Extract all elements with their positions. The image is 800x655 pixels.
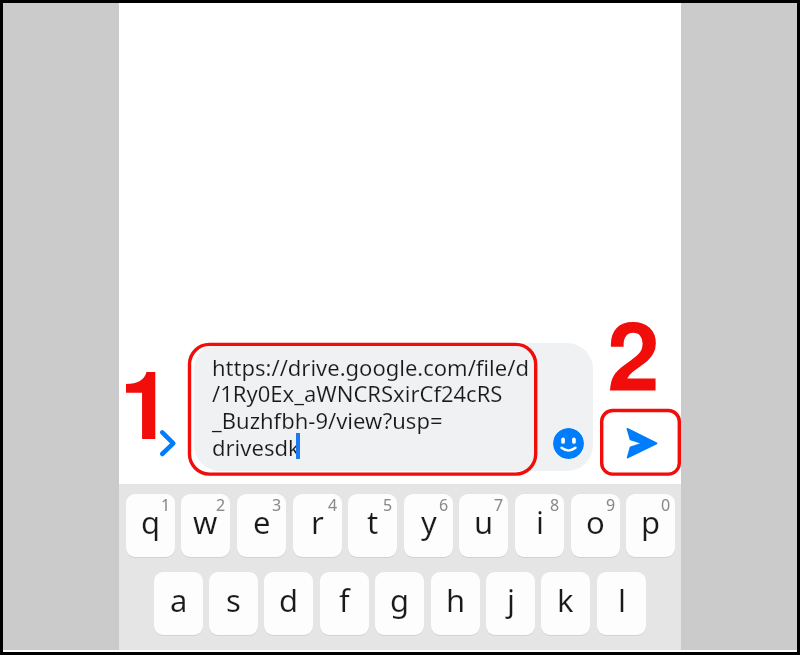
- staticText: https://drive.google.com/file/d /1Ry0Ex_…: [212, 352, 529, 463]
- staticText: 4: [328, 494, 338, 516]
- staticText: l: [618, 579, 626, 621]
- button[interactable]: o: [571, 494, 620, 557]
- button[interactable]: g: [375, 572, 424, 635]
- staticText: j: [507, 579, 515, 621]
- staticText: 3: [272, 494, 282, 516]
- staticText: q: [141, 501, 161, 543]
- staticText: r: [311, 501, 324, 543]
- staticText: 6: [439, 494, 449, 516]
- button[interactable]: l: [597, 572, 646, 635]
- staticText: u: [474, 501, 494, 543]
- staticText: 9: [606, 494, 616, 516]
- button[interactable]: Send: [601, 409, 680, 475]
- button[interactable]: d: [264, 572, 313, 635]
- staticText: 1: [161, 494, 171, 516]
- button[interactable]: i: [515, 494, 564, 557]
- staticText: 7: [494, 494, 504, 516]
- button[interactable]: a: [154, 572, 203, 635]
- staticText: e: [253, 501, 271, 543]
- staticText: 8: [550, 494, 560, 516]
- button[interactable]: u: [459, 494, 508, 557]
- button[interactable]: t: [348, 494, 397, 557]
- staticText: 0: [661, 494, 671, 516]
- staticText: a: [170, 579, 188, 621]
- staticText: w: [193, 501, 218, 543]
- button[interactable]: h: [431, 572, 480, 635]
- staticText: 2: [216, 494, 226, 516]
- button[interactable]: r: [293, 494, 342, 557]
- button[interactable]: y: [404, 494, 453, 557]
- button[interactable]: p: [626, 494, 675, 557]
- staticText: o: [586, 501, 605, 543]
- staticText: s: [226, 579, 241, 621]
- button[interactable]: w: [181, 494, 230, 557]
- button[interactable]: f: [320, 572, 369, 635]
- button[interactable]: Emoji: [553, 428, 584, 459]
- staticText: f: [339, 579, 350, 621]
- staticText: h: [446, 579, 466, 621]
- staticText: 5: [383, 494, 393, 516]
- staticText: k: [557, 579, 574, 621]
- staticText: t: [367, 501, 379, 543]
- staticText: g: [390, 579, 410, 621]
- staticText: y: [421, 501, 437, 543]
- button[interactable]: s: [209, 572, 258, 635]
- button[interactable]: Expand keyboard: [157, 427, 179, 461]
- staticText: i: [536, 501, 544, 543]
- staticText: p: [641, 501, 661, 543]
- button[interactable]: j: [486, 572, 535, 635]
- button[interactable]: q: [126, 494, 175, 557]
- staticText: d: [279, 579, 299, 621]
- button[interactable]: k: [541, 572, 590, 635]
- button[interactable]: https://drive.google.com/file/d /1Ry0Ex_…: [194, 343, 593, 471]
- button[interactable]: e: [237, 494, 286, 557]
